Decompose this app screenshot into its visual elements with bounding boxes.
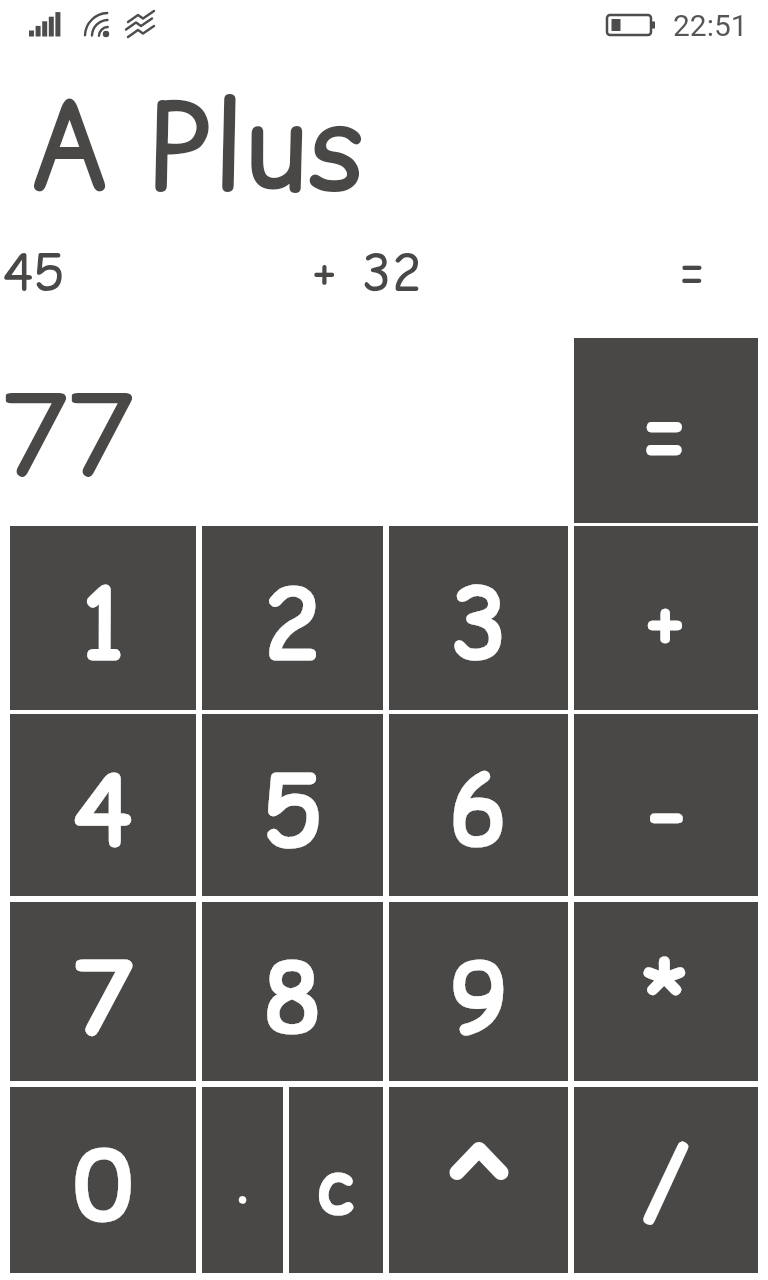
staticText: . xyxy=(236,1148,249,1218)
staticText: 0 xyxy=(74,1118,133,1252)
staticText: 2 xyxy=(263,556,322,690)
staticText: 9 xyxy=(449,930,508,1064)
staticText: 2 xyxy=(263,556,322,690)
staticText: c xyxy=(317,1134,356,1237)
staticText: 6 xyxy=(449,743,508,877)
button[interactable]: 3 xyxy=(389,526,568,710)
staticText: * xyxy=(642,933,691,1061)
button[interactable]: = xyxy=(574,338,758,523)
button[interactable] xyxy=(389,1087,568,1273)
button[interactable]: 6 xyxy=(389,714,568,896)
button[interactable]: - xyxy=(574,714,758,896)
staticText: 4 xyxy=(74,743,133,877)
staticText: 5 xyxy=(263,743,322,877)
button[interactable]: / xyxy=(574,1087,758,1273)
staticText: - xyxy=(646,743,686,877)
staticText: . xyxy=(236,1148,249,1218)
staticText: 22:51 xyxy=(673,8,748,43)
staticText: 7 xyxy=(74,930,133,1064)
staticText: * xyxy=(642,933,691,1061)
staticText: / xyxy=(641,1118,691,1252)
button[interactable]: 9 xyxy=(389,902,568,1081)
staticText: 1 xyxy=(81,556,125,690)
staticText: 7 xyxy=(74,930,133,1064)
button[interactable]: 7 xyxy=(10,902,196,1081)
staticText: c xyxy=(317,1134,356,1237)
staticText: 3 xyxy=(449,556,508,690)
button[interactable]: . xyxy=(202,1087,283,1273)
staticText: + xyxy=(313,237,338,307)
button[interactable]: 8 xyxy=(202,902,383,1081)
button[interactable]: * xyxy=(574,902,758,1081)
staticText: 8 xyxy=(263,930,322,1064)
button[interactable]: 1 xyxy=(10,526,196,710)
staticText: 0 xyxy=(74,1118,133,1252)
button[interactable]: 0 xyxy=(10,1087,196,1273)
button[interactable]: 4 xyxy=(10,714,196,896)
staticText: 5 xyxy=(263,743,322,877)
staticText: + xyxy=(647,567,686,679)
staticText: A Plus xyxy=(26,62,366,229)
button[interactable]: c xyxy=(289,1087,383,1273)
staticText: 77 xyxy=(2,359,134,510)
staticText: 45 xyxy=(3,237,65,307)
button[interactable]: 2 xyxy=(202,526,383,710)
staticText: 4 xyxy=(74,743,133,877)
staticText: / xyxy=(641,1118,691,1252)
button[interactable]: 5 xyxy=(202,714,383,896)
staticText: 32 xyxy=(361,237,423,307)
staticText: = xyxy=(680,237,706,307)
staticText: - xyxy=(646,743,686,877)
staticText: 1 xyxy=(81,556,125,690)
staticText: 6 xyxy=(449,743,508,877)
staticText: = xyxy=(644,376,688,495)
staticText: + xyxy=(647,567,686,679)
staticText: 3 xyxy=(449,556,508,690)
staticText: 9 xyxy=(449,930,508,1064)
staticText: = xyxy=(644,376,688,495)
button[interactable]: + xyxy=(574,526,758,710)
staticText: 8 xyxy=(263,930,322,1064)
